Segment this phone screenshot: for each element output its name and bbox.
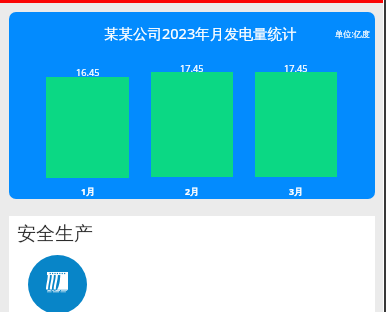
button[interactable]: 安全生产 [9,216,375,312]
staticText: 某某公司2023年月发电量统计 [104,23,297,43]
staticText: 1月 [81,186,95,198]
staticText: 安全生产 [17,222,93,246]
staticText: 单位:亿度 [335,28,370,39]
staticText: 16.45 [76,66,100,79]
staticText: 3月 [289,186,303,198]
staticText: 2月 [185,186,199,198]
staticText: 17.45 [284,62,308,75]
button[interactable]: 某某公司2023年月发电量统计 [9,12,375,199]
button[interactable]: 安全生产 [28,255,87,312]
staticText: 17.45 [180,62,204,75]
